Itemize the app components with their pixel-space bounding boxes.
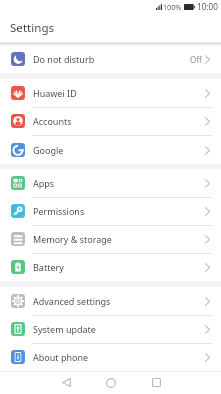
staticText: Do not disturb <box>33 53 95 65</box>
button[interactable]: Huawei ID <box>0 79 221 107</box>
staticText: System update <box>33 323 96 335</box>
staticText: About phone <box>33 351 89 363</box>
staticText: Huawei ID <box>33 87 77 99</box>
staticText: Memory & storage <box>33 233 112 245</box>
staticText: 100% <box>163 2 182 12</box>
button[interactable]: Battery <box>0 253 221 281</box>
staticText: Battery <box>33 261 64 273</box>
button[interactable]: Permissions <box>0 197 221 225</box>
staticText: Advanced settings <box>33 295 111 307</box>
button[interactable]: Advanced settings <box>0 287 221 315</box>
button[interactable]: Recent apps <box>144 371 168 394</box>
staticText: Permissions <box>33 205 85 217</box>
staticText: Off <box>190 54 202 65</box>
staticText: Settings <box>10 20 55 36</box>
button[interactable]: Back <box>54 371 78 394</box>
button[interactable]: About phone <box>0 343 221 371</box>
staticText: Google <box>33 144 64 156</box>
button[interactable]: System update <box>0 315 221 343</box>
staticText: Apps <box>33 177 55 189</box>
button[interactable]: Memory & storage <box>0 225 221 253</box>
button[interactable]: Accounts <box>0 107 221 135</box>
button[interactable]: Home <box>99 371 123 394</box>
staticText: 10:00 <box>197 1 218 12</box>
staticText: Accounts <box>33 115 72 127</box>
button[interactable]: Apps <box>0 169 221 197</box>
button[interactable]: Google <box>0 136 221 164</box>
button[interactable]: Do not disturb <box>0 45 221 73</box>
